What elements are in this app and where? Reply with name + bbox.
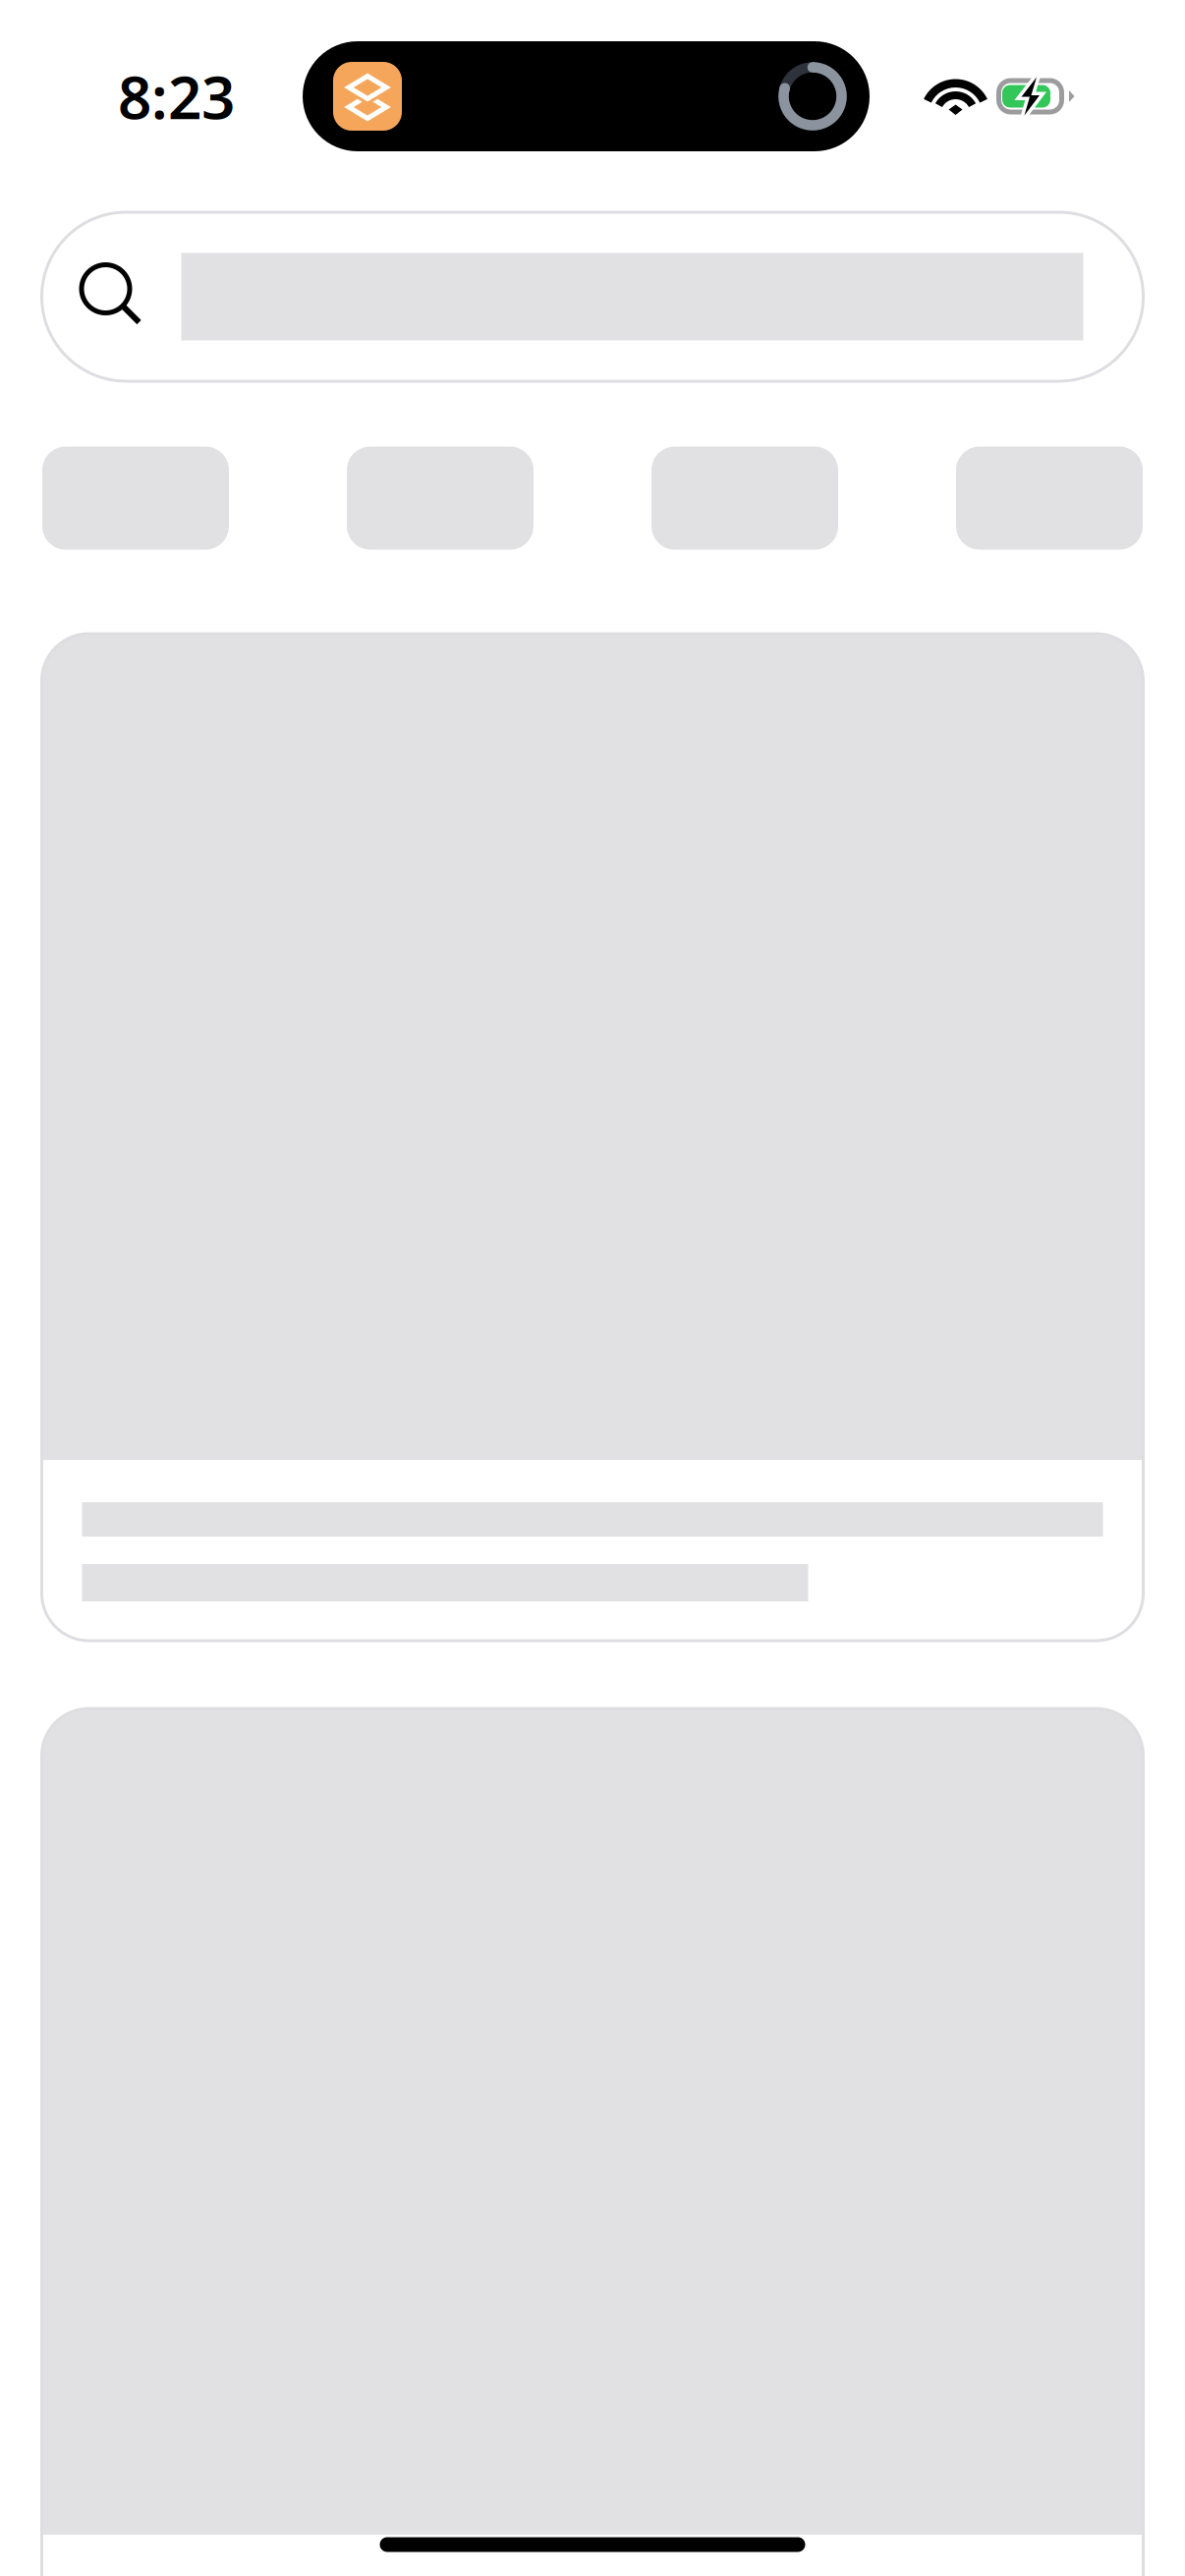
- button[interactable]: Filter: [42, 447, 229, 550]
- staticText: 8:23: [118, 57, 235, 135]
- button[interactable]: Loading item: [42, 634, 1143, 1641]
- button[interactable]: Filter: [956, 447, 1143, 550]
- button[interactable]: Search: [42, 212, 1143, 381]
- button[interactable]: Filter: [651, 447, 838, 550]
- button[interactable]: Filter: [347, 447, 534, 550]
- button[interactable]: Loading item: [42, 1708, 1143, 2576]
